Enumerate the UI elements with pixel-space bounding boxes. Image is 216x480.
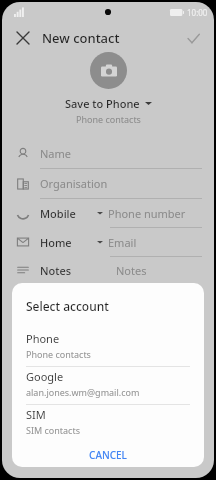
staticText: Phone contacts: [26, 348, 91, 360]
staticText: Home: [40, 235, 72, 250]
staticText: Name: [40, 146, 72, 161]
button[interactable]: Phone: [12, 329, 204, 366]
staticText: SIM contacts: [26, 424, 81, 436]
staticText: Organisation: [40, 176, 108, 191]
staticText: Notes: [40, 263, 72, 278]
button[interactable]: Close: [10, 25, 36, 51]
button[interactable]: SIM: [12, 405, 204, 442]
button[interactable]: Mobile: [2, 199, 214, 228]
staticText: New contact: [42, 29, 120, 47]
staticText: Select account: [26, 298, 109, 314]
staticText: Google: [26, 369, 64, 384]
staticText: Save to Phone: [65, 96, 140, 111]
staticText: Mobile: [40, 206, 76, 221]
button[interactable]: Home: [2, 228, 214, 257]
button[interactable]: Notes: [2, 257, 214, 283]
button[interactable]: Save: [180, 25, 206, 51]
staticText: CANCEL: [89, 448, 127, 462]
button[interactable]: CANCEL: [79, 444, 137, 466]
button[interactable]: Google: [12, 367, 204, 404]
staticText: Notes: [116, 263, 147, 278]
staticText: Email: [108, 235, 137, 250]
button[interactable]: Organisation: [2, 169, 214, 199]
staticText: Phone number: [108, 206, 186, 221]
staticText: Phone: [26, 331, 60, 346]
staticText: SIM: [26, 407, 46, 422]
staticText: alan.jones.wm@gmail.com: [26, 386, 140, 398]
staticText: Phone contacts: [76, 113, 141, 125]
button[interactable]: Name: [2, 139, 214, 169]
button[interactable]: Save to Phone: [2, 96, 214, 111]
staticText: 10:00: [187, 7, 208, 18]
button[interactable]: Add photo: [90, 52, 127, 89]
